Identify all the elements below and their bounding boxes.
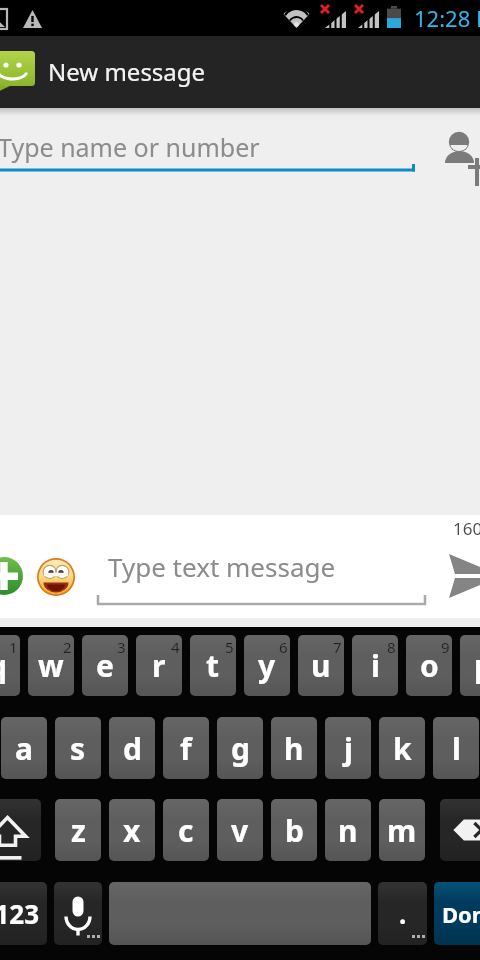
- staticText: e: [96, 645, 114, 686]
- button[interactable]: g: [217, 717, 263, 779]
- staticText: t: [206, 645, 220, 686]
- staticText: 4: [171, 637, 180, 657]
- button[interactable]: 5: [190, 635, 236, 696]
- button[interactable]: .: [378, 882, 427, 945]
- button[interactable]: 1: [0, 635, 20, 696]
- staticText: n: [338, 810, 358, 851]
- staticText: 160/1: [453, 517, 480, 540]
- staticText: b: [285, 810, 304, 851]
- staticText: 5: [225, 637, 234, 657]
- staticText: i: [371, 645, 380, 686]
- staticText: f: [180, 728, 192, 769]
- staticText: m: [387, 810, 417, 851]
- button[interactable]: d: [109, 717, 155, 779]
- button[interactable]: ?123: [0, 882, 47, 945]
- button[interactable]: Insert smiley: [36, 558, 76, 596]
- button[interactable]: Add recipient from contacts: [440, 124, 480, 176]
- button[interactable]: f: [163, 717, 209, 779]
- button[interactable]: Attach: [0, 557, 23, 595]
- button[interactable]: [440, 799, 480, 861]
- staticText: p: [474, 645, 480, 686]
- staticText: s: [70, 728, 86, 769]
- button[interactable]: c: [163, 799, 209, 861]
- staticText: 1: [9, 637, 18, 657]
- button[interactable]: b: [271, 799, 317, 861]
- button[interactable]: Send: [434, 536, 480, 618]
- staticText: d: [123, 728, 142, 769]
- staticText: 2: [63, 637, 72, 657]
- staticText: j: [344, 728, 353, 769]
- button[interactable]: 8: [352, 635, 398, 696]
- staticText: Type name or number: [0, 130, 260, 164]
- button[interactable]: [0, 799, 41, 861]
- staticText: 12:28 P: [414, 3, 480, 33]
- button[interactable]: v: [217, 799, 263, 861]
- staticText: k: [393, 728, 412, 769]
- staticText: 9: [441, 637, 450, 657]
- staticText: l: [452, 728, 461, 769]
- button[interactable]: [109, 882, 371, 945]
- staticText: g: [231, 728, 250, 769]
- button[interactable]: 4: [136, 635, 182, 696]
- staticText: Done: [442, 899, 480, 929]
- staticText: a: [15, 728, 33, 769]
- button[interactable]: 0: [460, 635, 480, 696]
- button[interactable]: 9: [406, 635, 452, 696]
- button[interactable]: Done: [434, 882, 480, 945]
- staticText: q: [0, 645, 7, 686]
- button[interactable]: k: [379, 717, 425, 779]
- staticText: New message: [48, 55, 206, 88]
- staticText: ?123: [0, 896, 40, 931]
- staticText: z: [71, 810, 86, 851]
- staticText: 7: [333, 637, 342, 657]
- staticText: .: [399, 896, 407, 931]
- button[interactable]: z: [55, 799, 101, 861]
- button[interactable]: 2: [28, 635, 74, 696]
- staticText: Type text message: [108, 549, 336, 584]
- button[interactable]: [54, 882, 102, 945]
- staticText: y: [258, 645, 276, 686]
- button[interactable]: a: [1, 717, 47, 779]
- staticText: u: [311, 645, 331, 686]
- button[interactable]: n: [325, 799, 371, 861]
- button[interactable]: x: [109, 799, 155, 861]
- button[interactable]: h: [271, 717, 317, 779]
- staticText: x: [123, 810, 141, 851]
- button[interactable]: m: [379, 799, 425, 861]
- button[interactable]: j: [325, 717, 371, 779]
- staticText: h: [284, 728, 304, 769]
- button[interactable]: 7: [298, 635, 344, 696]
- staticText: 6: [279, 637, 288, 657]
- button[interactable]: s: [55, 717, 101, 779]
- staticText: 3: [117, 637, 126, 657]
- staticText: w: [38, 645, 64, 686]
- button[interactable]: 6: [244, 635, 290, 696]
- staticText: r: [152, 645, 166, 686]
- button[interactable]: l: [433, 717, 479, 779]
- staticText: 8: [387, 637, 396, 657]
- staticText: o: [420, 645, 439, 686]
- staticText: v: [231, 810, 249, 851]
- button[interactable]: 3: [82, 635, 128, 696]
- staticText: c: [178, 810, 194, 851]
